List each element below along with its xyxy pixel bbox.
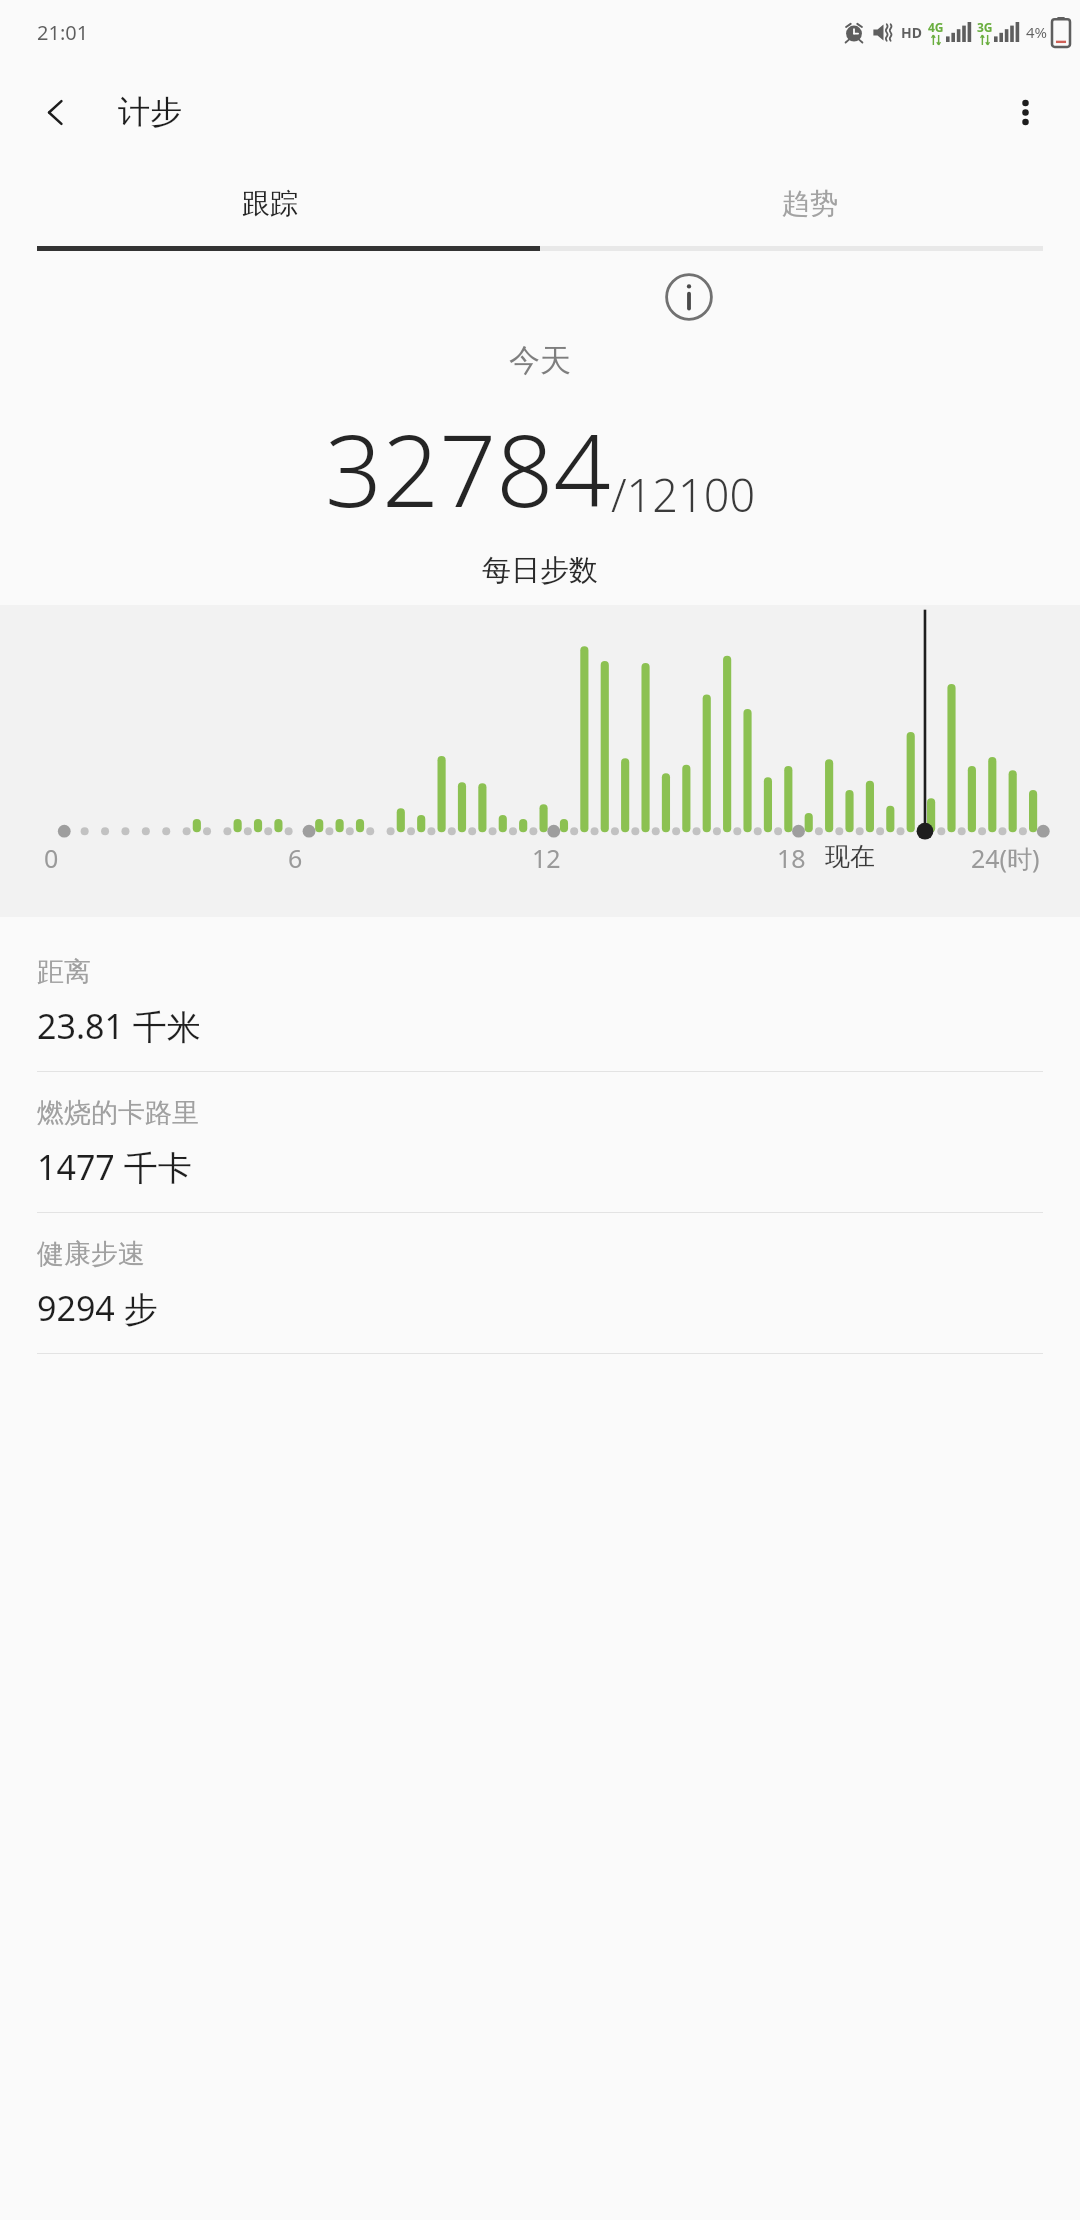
staticText: 24(时) [971, 841, 1040, 875]
staticText: 9294 步 [37, 1285, 158, 1331]
button[interactable]: Back [26, 83, 84, 141]
staticText: 0 [44, 841, 59, 875]
staticText: 18 [777, 841, 806, 875]
staticText: /12100 [611, 464, 756, 525]
staticText: 趋势 [782, 186, 838, 221]
button[interactable]: More options [996, 83, 1054, 141]
staticText: 今天 [509, 341, 571, 380]
button[interactable]: Information [657, 265, 721, 329]
staticText: 健康步速 [37, 1237, 145, 1271]
button[interactable]: 跟踪 [0, 160, 540, 246]
staticText: 6 [288, 841, 303, 875]
staticText: 12 [532, 841, 561, 875]
staticText: 每日步数 [482, 552, 598, 589]
staticText: 23.81 千米 [37, 1003, 201, 1049]
staticText: 现在 [825, 841, 875, 872]
staticText: 32784 [325, 400, 611, 536]
staticText: 1477 千卡 [37, 1144, 192, 1190]
staticText: 4G [928, 19, 944, 35]
staticText: 3G [977, 19, 993, 35]
staticText: 距离 [37, 955, 91, 989]
staticText: 跟踪 [242, 186, 298, 221]
staticText: HD [901, 23, 922, 42]
staticText: 计步 [118, 92, 182, 132]
staticText: 燃烧的卡路里 [37, 1096, 199, 1130]
staticText: 4% [1026, 22, 1048, 42]
button[interactable]: 趋势 [540, 160, 1080, 246]
staticText: 21:01 [37, 19, 89, 46]
